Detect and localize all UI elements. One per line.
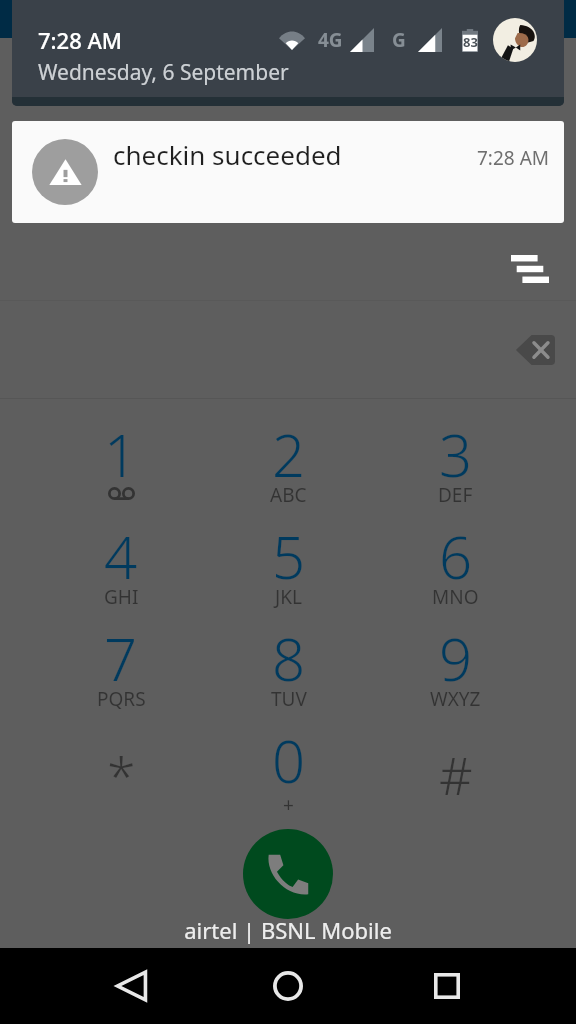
staticText: GHI bbox=[104, 584, 139, 610]
staticText: 7:28 AM bbox=[38, 25, 123, 55]
staticText: 7:28 AM bbox=[477, 145, 550, 171]
staticText: Wednesday, 6 September bbox=[38, 58, 289, 87]
button[interactable]: 7 bbox=[37, 603, 205, 705]
button[interactable]: 6 bbox=[372, 501, 539, 603]
button[interactable]: Home bbox=[265, 963, 311, 1009]
button[interactable]: 9 bbox=[372, 603, 539, 705]
button[interactable]: 5 bbox=[205, 501, 372, 603]
button[interactable]: 2 bbox=[205, 399, 372, 501]
staticText: # bbox=[439, 739, 473, 810]
button[interactable]: Recent apps bbox=[424, 963, 470, 1009]
staticText: G bbox=[392, 27, 406, 53]
staticText: PQRS bbox=[97, 686, 146, 712]
staticText: 1 bbox=[104, 415, 138, 494]
button[interactable]: Call bbox=[243, 829, 333, 919]
staticText: checkin succeeded bbox=[113, 137, 342, 172]
button[interactable]: # bbox=[372, 705, 539, 807]
staticText: ABC bbox=[270, 482, 307, 508]
staticText: + bbox=[283, 792, 294, 818]
staticText: JKL bbox=[275, 584, 302, 610]
staticText: 6 bbox=[439, 517, 473, 596]
button[interactable]: 1 bbox=[37, 399, 205, 501]
staticText: DEF bbox=[438, 482, 473, 508]
button[interactable]: Clear all notifications bbox=[504, 243, 556, 295]
staticText: 9 bbox=[439, 619, 473, 698]
button[interactable]: * bbox=[37, 705, 205, 807]
button[interactable]: Back bbox=[108, 963, 154, 1009]
staticText: 8 bbox=[272, 619, 306, 698]
staticText: 0 bbox=[272, 721, 306, 800]
button[interactable]: checkin succeeded bbox=[12, 121, 564, 223]
staticText: 4 bbox=[104, 517, 138, 596]
button[interactable]: 8 bbox=[205, 603, 372, 705]
staticText: WXYZ bbox=[430, 686, 481, 712]
staticText: 2 bbox=[272, 415, 306, 494]
staticText: 3 bbox=[439, 415, 473, 494]
staticText: 83 bbox=[463, 33, 478, 51]
staticText: 5 bbox=[272, 517, 306, 596]
button[interactable]: Backspace bbox=[506, 321, 564, 379]
button[interactable]: 4 bbox=[37, 501, 205, 603]
staticText: airtel | BSNL Mobile bbox=[0, 915, 576, 945]
button[interactable]: 0 bbox=[205, 705, 372, 807]
staticText: MNO bbox=[432, 584, 479, 610]
staticText: TUV bbox=[271, 686, 307, 712]
staticText: 7 bbox=[104, 619, 138, 698]
button[interactable]: 3 bbox=[372, 399, 539, 501]
staticText: * bbox=[107, 739, 136, 810]
staticText: 4G bbox=[318, 27, 343, 53]
